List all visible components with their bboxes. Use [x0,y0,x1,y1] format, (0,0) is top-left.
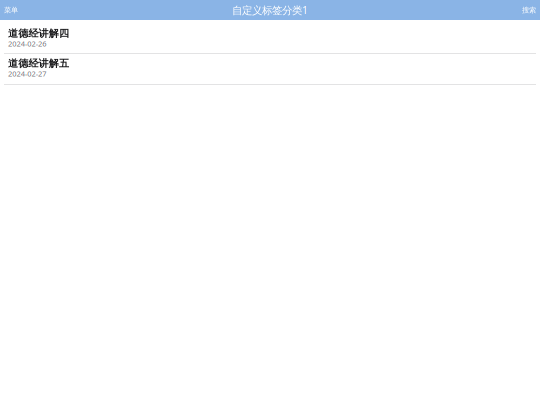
staticText: 2024-02-27 [8,68,46,79]
staticText: 道德经讲解四 [8,27,69,40]
button[interactable]: 道德经讲解五 [0,54,540,84]
staticText: 菜单 [4,5,18,15]
button[interactable]: 搜索 [518,0,540,20]
button[interactable]: 菜单 [0,0,22,20]
staticText: 2024-02-26 [8,38,46,49]
staticText: 搜索 [522,5,536,15]
staticText: 自定义标签分类1 [232,3,308,17]
staticText: 道德经讲解五 [8,57,69,70]
button[interactable]: 道德经讲解四 [0,20,540,53]
